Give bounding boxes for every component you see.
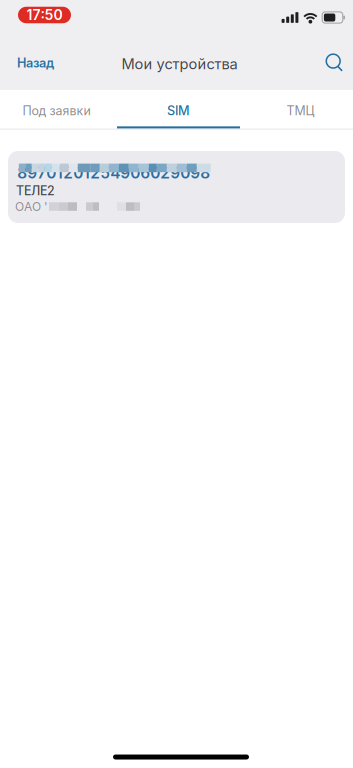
button[interactable]: ТМЦ xyxy=(239,90,353,128)
staticText: ТЕЛЕ2 xyxy=(16,183,55,198)
button[interactable]: 89701201254906029098 xyxy=(8,151,345,223)
staticText: 17:50 xyxy=(26,6,62,23)
staticText: ТМЦ xyxy=(286,103,314,118)
staticText: Назад xyxy=(17,55,54,71)
button[interactable]: Назад xyxy=(0,40,68,80)
button[interactable]: Search xyxy=(311,40,353,80)
staticText: ОАО ' xyxy=(15,199,48,214)
button[interactable]: SIM xyxy=(117,90,239,128)
staticText: 89701201254906029098 xyxy=(17,163,210,182)
staticText: Под заявки xyxy=(22,103,90,118)
button[interactable]: Под заявки xyxy=(0,90,117,128)
staticText: SIM xyxy=(167,103,190,118)
staticText: Мои устройства xyxy=(121,55,237,73)
